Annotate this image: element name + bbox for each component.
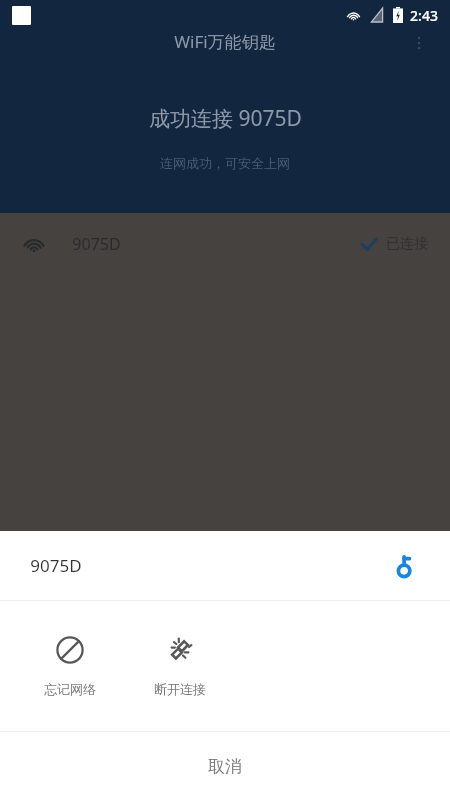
- button[interactable]: 9075D: [0, 213, 450, 275]
- staticText: 9075D: [30, 554, 82, 577]
- staticText: 忘记网络: [44, 681, 96, 697]
- button[interactable]: 断开连接: [136, 629, 224, 703]
- button[interactable]: Show password key: [390, 551, 420, 581]
- staticText: 9075D: [72, 233, 121, 255]
- staticText: 取消: [208, 756, 242, 777]
- staticText: 连网成功，可安全上网: [160, 155, 290, 171]
- staticText: 已连接: [386, 235, 428, 253]
- staticText: 成功连接 9075D: [149, 104, 302, 133]
- staticText: WiFi万能钥匙: [174, 30, 276, 53]
- staticText: 2:43: [410, 6, 438, 25]
- button[interactable]: 9075D: [0, 531, 450, 600]
- button[interactable]: 取消: [0, 732, 450, 800]
- staticText: 断开连接: [154, 681, 206, 697]
- button[interactable]: More options: [402, 30, 436, 56]
- button[interactable]: 忘记网络: [26, 629, 114, 703]
